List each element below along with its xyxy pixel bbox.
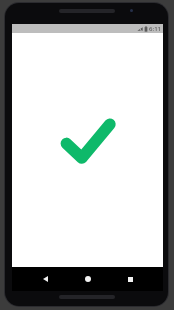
button[interactable]: Success check [61, 114, 115, 168]
button[interactable]: Recent apps [123, 272, 137, 286]
button[interactable]: Home [81, 272, 95, 286]
button[interactable]: Back [38, 272, 52, 286]
staticText: 6:11 [149, 25, 161, 33]
